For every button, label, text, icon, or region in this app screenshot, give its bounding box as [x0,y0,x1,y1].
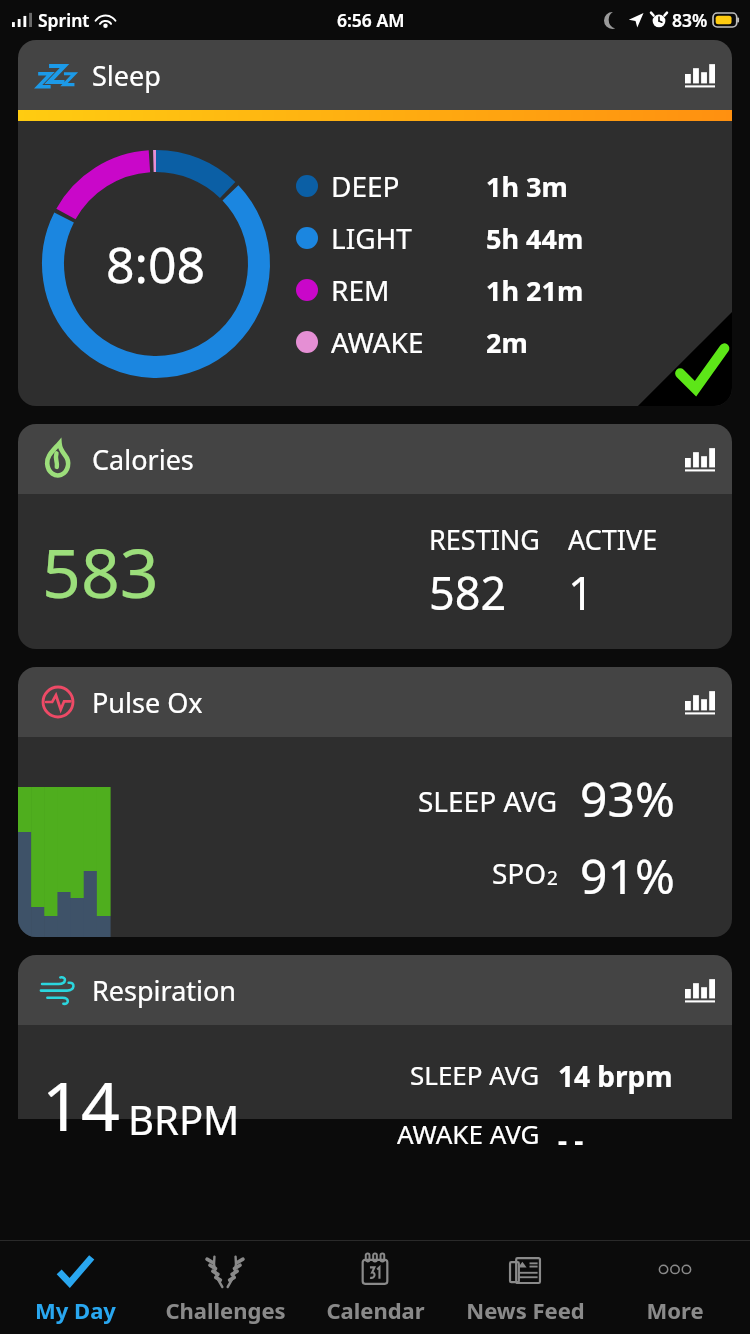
button[interactable]: More [600,1241,750,1334]
button[interactable]: News Feed [450,1241,600,1334]
staticText: 93% [580,766,675,831]
button[interactable]: Sleep chart [674,49,726,101]
staticText: 582 [429,562,507,623]
staticText: 8:08 [106,230,206,298]
staticText: Calendar [326,1295,425,1325]
button[interactable]: Calendar [300,1241,450,1334]
staticText: 583 [42,525,159,618]
button[interactable]: 8:08 [18,121,732,406]
staticText: 91% [580,843,675,908]
staticText: Sprint [38,8,90,32]
staticText: 1h 21m [486,272,584,309]
staticText: 2m [486,324,528,361]
staticText: 1h 3m [486,168,568,205]
staticText: 5h 44m [486,220,584,257]
staticText: Challenges [165,1295,286,1325]
staticText: 14 brpm [558,1057,673,1095]
staticText: REM [331,271,390,309]
button[interactable]: Sleep [18,40,732,110]
staticText: Respiration [92,972,237,1009]
staticText: LIGHT [331,219,412,257]
button[interactable]: 583 [18,494,732,649]
staticText: Calories [92,441,194,478]
staticText: Pulse Ox [92,684,203,721]
staticText: DEEP [331,167,400,205]
button[interactable]: Respiration [18,955,732,1025]
staticText: SPO [492,854,547,892]
staticText: SLEEP AVG [418,782,558,820]
button[interactable]: Calories [18,424,732,494]
button[interactable]: SLEEP AVG [18,737,732,937]
staticText: RESTING [429,521,540,558]
staticText: Sleep [92,57,161,94]
button[interactable]: My Day [0,1241,150,1334]
staticText: 83% [672,8,708,32]
button[interactable]: Calories chart [674,433,726,485]
staticText: SLEEP AVG [410,1057,540,1092]
staticText: AWAKE [331,323,424,361]
button[interactable]: Pulse Ox chart [674,676,726,728]
staticText: My Day [35,1295,116,1325]
staticText: 6:56 AM [337,8,405,32]
button[interactable]: Respiration chart [674,964,726,1016]
button[interactable]: Pulse Ox [18,667,732,737]
staticText: ACTIVE [568,521,658,558]
staticText: 14 [42,1058,120,1151]
staticText: 1 [568,562,594,623]
staticText: BRPM [128,1092,240,1146]
button[interactable]: 14 [18,1025,732,1119]
staticText: 2 [547,865,558,891]
staticText: News Feed [466,1295,585,1325]
staticText: AWAKE AVG [397,1116,540,1151]
button[interactable]: Challenges [150,1241,300,1334]
staticText: More [646,1295,704,1325]
staticText: - - [558,1121,584,1151]
